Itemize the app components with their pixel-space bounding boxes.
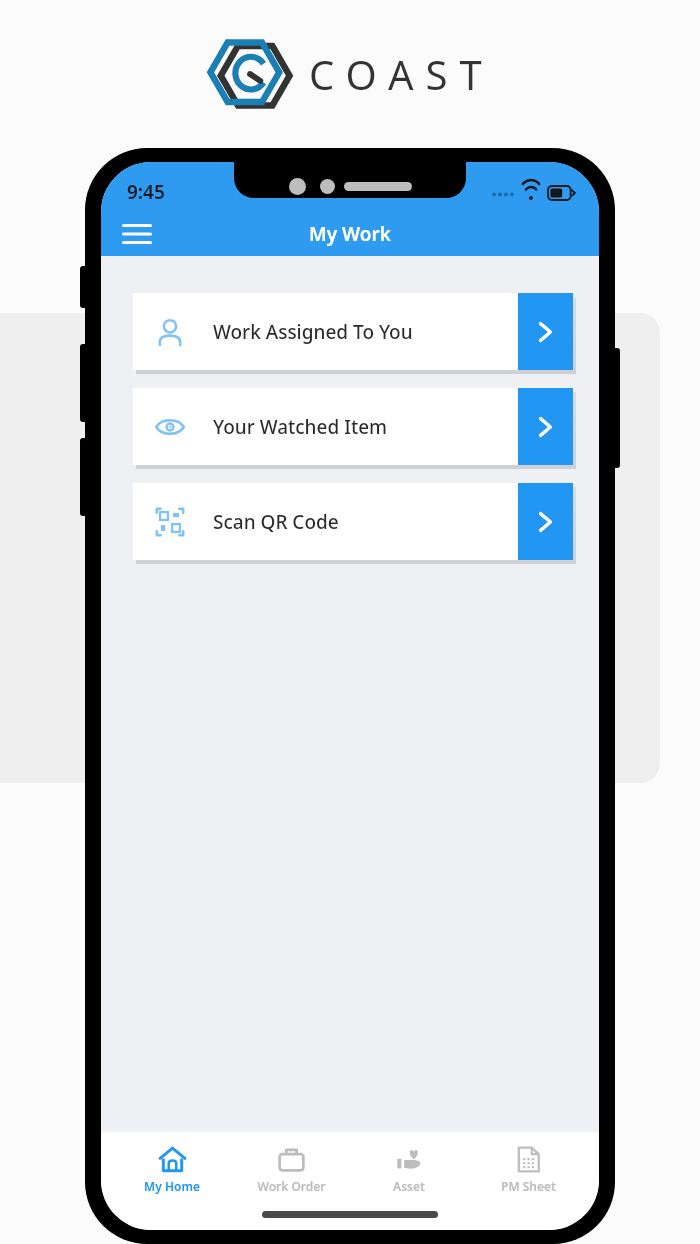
button[interactable]: PM Sheet bbox=[480, 1144, 576, 1196]
button[interactable]: Work Assigned To You bbox=[133, 293, 573, 370]
button[interactable]: Your Watched Item bbox=[133, 388, 573, 465]
staticText: Work Order bbox=[257, 1178, 326, 1194]
staticText: My Home bbox=[144, 1178, 200, 1194]
staticText: 9:45 bbox=[127, 179, 165, 205]
staticText: COAST bbox=[309, 47, 494, 101]
staticText: Work Assigned To You bbox=[213, 319, 413, 345]
button[interactable]: My Home bbox=[124, 1144, 220, 1196]
staticText: My Work bbox=[309, 221, 391, 247]
staticText: Your Watched Item bbox=[213, 414, 388, 440]
staticText: PM Sheet bbox=[501, 1178, 556, 1194]
staticText: Scan QR Code bbox=[213, 509, 339, 535]
button[interactable]: Asset bbox=[361, 1144, 457, 1196]
button[interactable]: Scan QR Code bbox=[133, 483, 573, 560]
staticText: Asset bbox=[393, 1178, 425, 1194]
button[interactable]: Menu bbox=[115, 212, 159, 256]
button[interactable]: Work Order bbox=[243, 1144, 339, 1196]
